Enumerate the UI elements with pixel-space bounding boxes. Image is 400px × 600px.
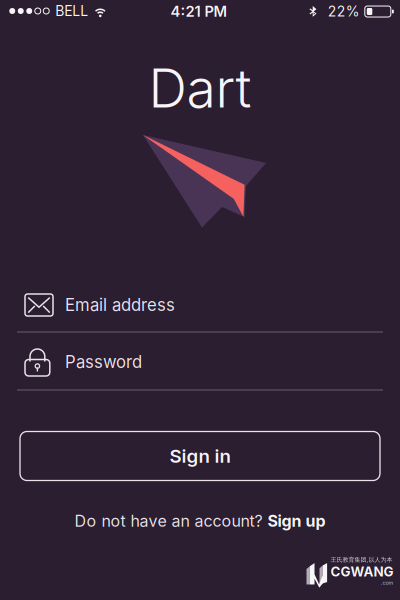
staticText: .com (380, 580, 393, 586)
staticText: Email address (65, 295, 175, 315)
button[interactable]: Password (0, 335, 400, 389)
staticText: Password (65, 352, 142, 372)
staticText: 王氏教育集团,以人为本 (330, 556, 392, 563)
staticText: 4:21 PM (170, 3, 227, 20)
staticText: CGWANG (330, 563, 393, 580)
staticText: BELL (55, 2, 88, 19)
staticText: Dart (148, 56, 251, 120)
staticText: Sign in (169, 445, 230, 467)
button[interactable]: Email address (0, 278, 400, 332)
button[interactable]: Sign in (20, 431, 380, 480)
staticText: 22% (328, 3, 360, 20)
staticText: Sign up (267, 511, 325, 531)
staticText: Do not have an account? (74, 511, 267, 531)
button[interactable]: Do not have an account? (20, 508, 380, 534)
